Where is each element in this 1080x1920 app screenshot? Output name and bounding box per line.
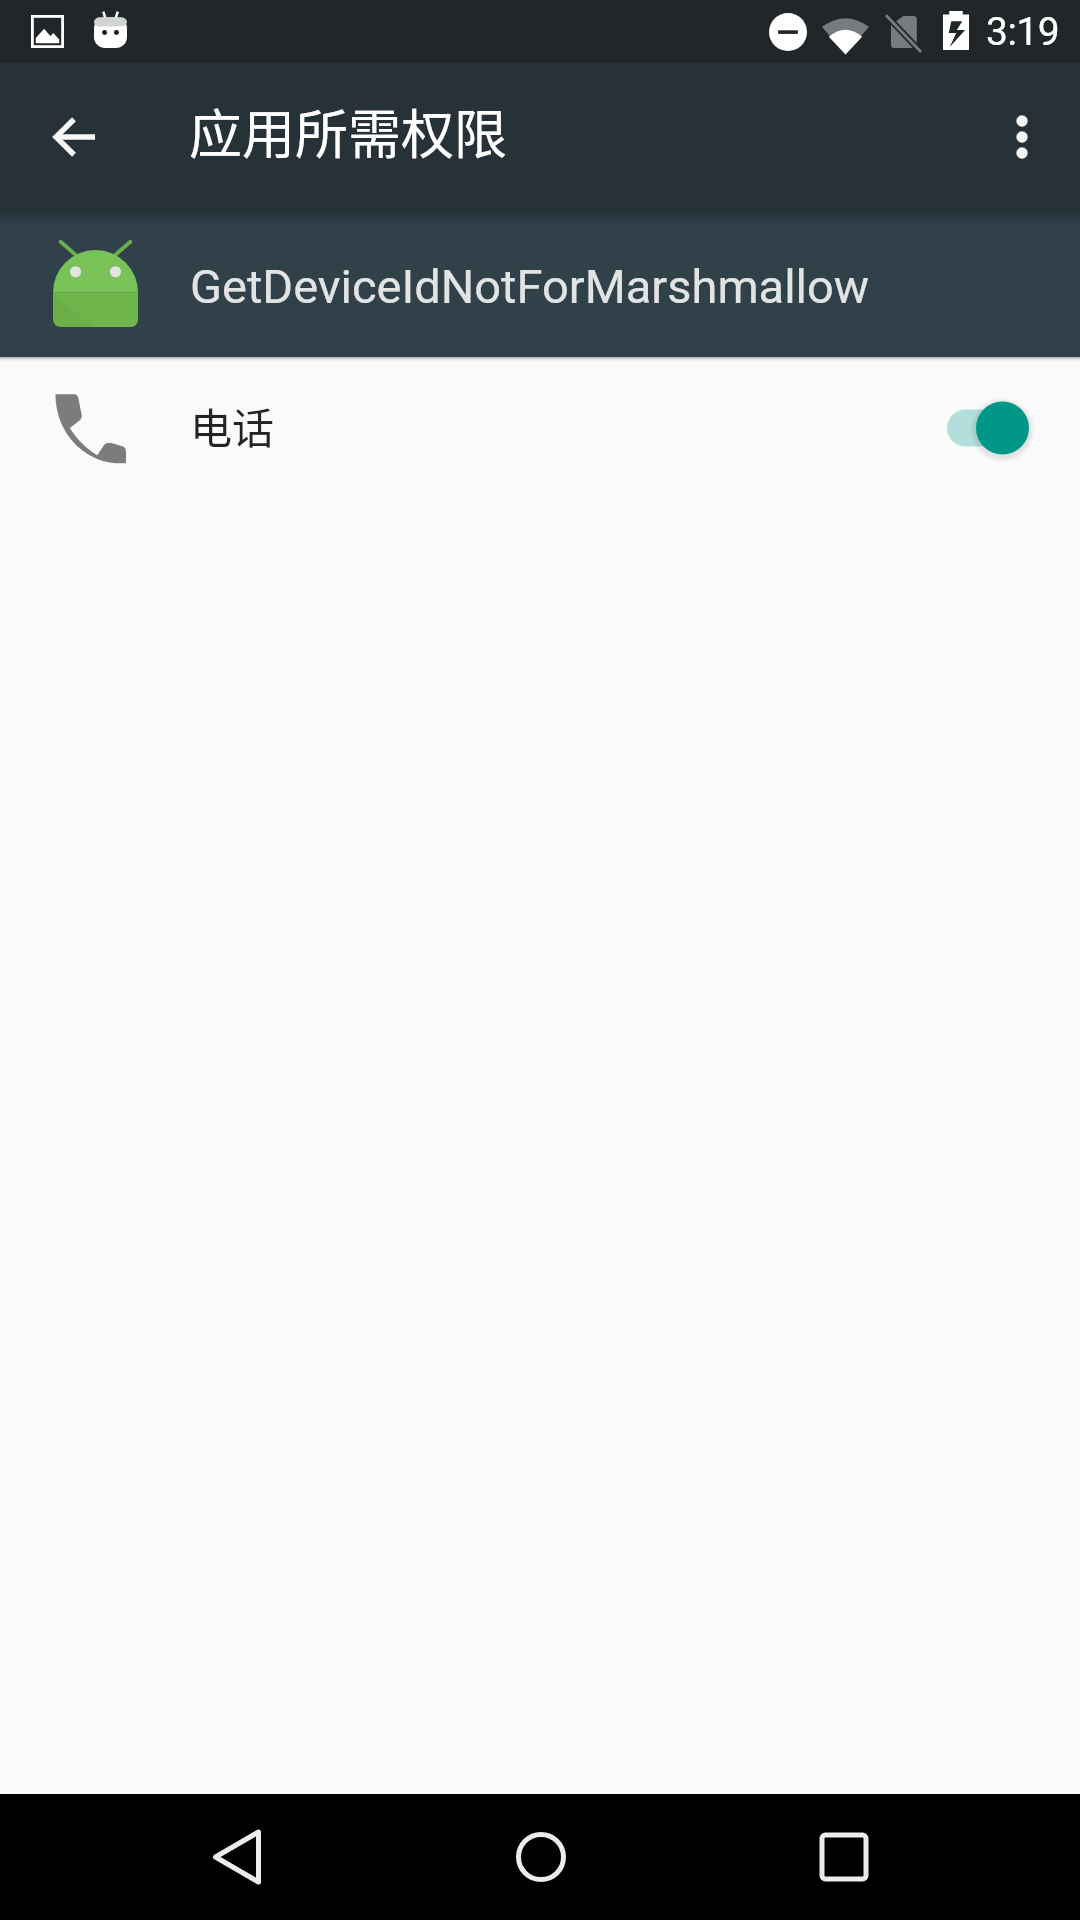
staticText: GetDeviceIdNotForMarshmallow [190,259,870,314]
staticText: 3:19 [986,9,1060,55]
button[interactable]: 电话 [0,357,1080,498]
staticText: 电话 [190,395,275,456]
button[interactable]: Home [486,1802,596,1912]
button[interactable]: Back [26,89,122,185]
staticText: 应用所需权限 [189,93,507,170]
button[interactable]: GetDeviceIdNotForMarshmallow [0,210,1080,357]
button[interactable]: Back [182,1802,292,1912]
button[interactable]: More options [974,89,1070,185]
button[interactable]: Recents [789,1802,899,1912]
